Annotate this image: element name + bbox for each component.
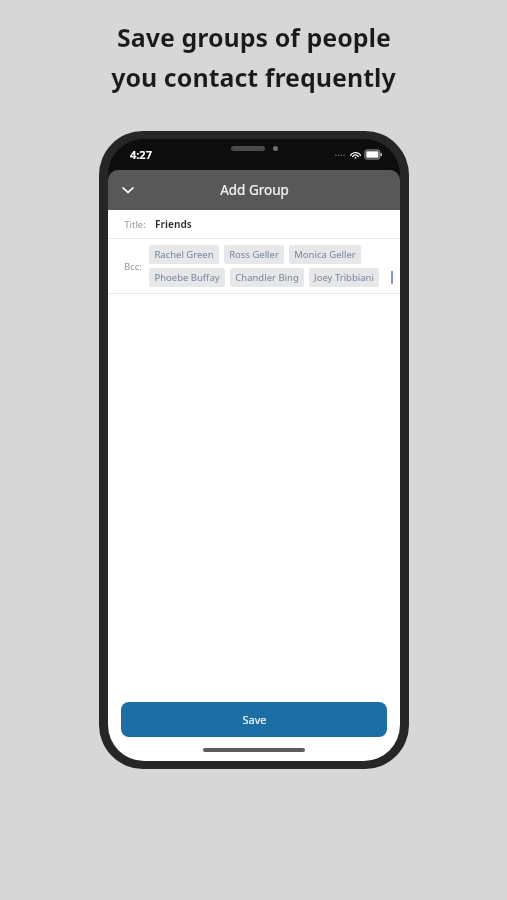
- button[interactable]: Ross Geller: [224, 245, 284, 264]
- button[interactable]: Joey Tribbiani: [309, 268, 379, 287]
- button[interactable]: Collapse: [108, 170, 148, 210]
- staticText: Friends: [155, 217, 192, 231]
- staticText: Rachel Green: [154, 248, 214, 261]
- staticText: you contact frequently: [111, 60, 396, 94]
- staticText: Monica Geller: [294, 248, 356, 261]
- button[interactable]: Chandler Bing: [230, 268, 304, 287]
- staticText: Add Group: [220, 181, 289, 199]
- staticText: Chandler Bing: [235, 271, 299, 284]
- button[interactable]: Phoebe Buffay: [149, 268, 225, 287]
- staticText: Phoebe Buffay: [154, 271, 220, 284]
- staticText: Title:: [124, 218, 146, 231]
- staticText: Save groups of people: [117, 20, 391, 54]
- button[interactable]: Title:: [108, 210, 400, 238]
- staticText: Ross Geller: [229, 248, 279, 261]
- button[interactable]: Bcc:: [108, 239, 400, 293]
- staticText: Joey Tribbiani: [314, 271, 374, 284]
- staticText: Bcc:: [124, 260, 142, 273]
- staticText: Save: [242, 712, 267, 727]
- staticText: 4:27: [130, 147, 152, 162]
- button[interactable]: Save: [121, 702, 387, 737]
- button[interactable]: Rachel Green: [149, 245, 219, 264]
- button[interactable]: Monica Geller: [289, 245, 361, 264]
